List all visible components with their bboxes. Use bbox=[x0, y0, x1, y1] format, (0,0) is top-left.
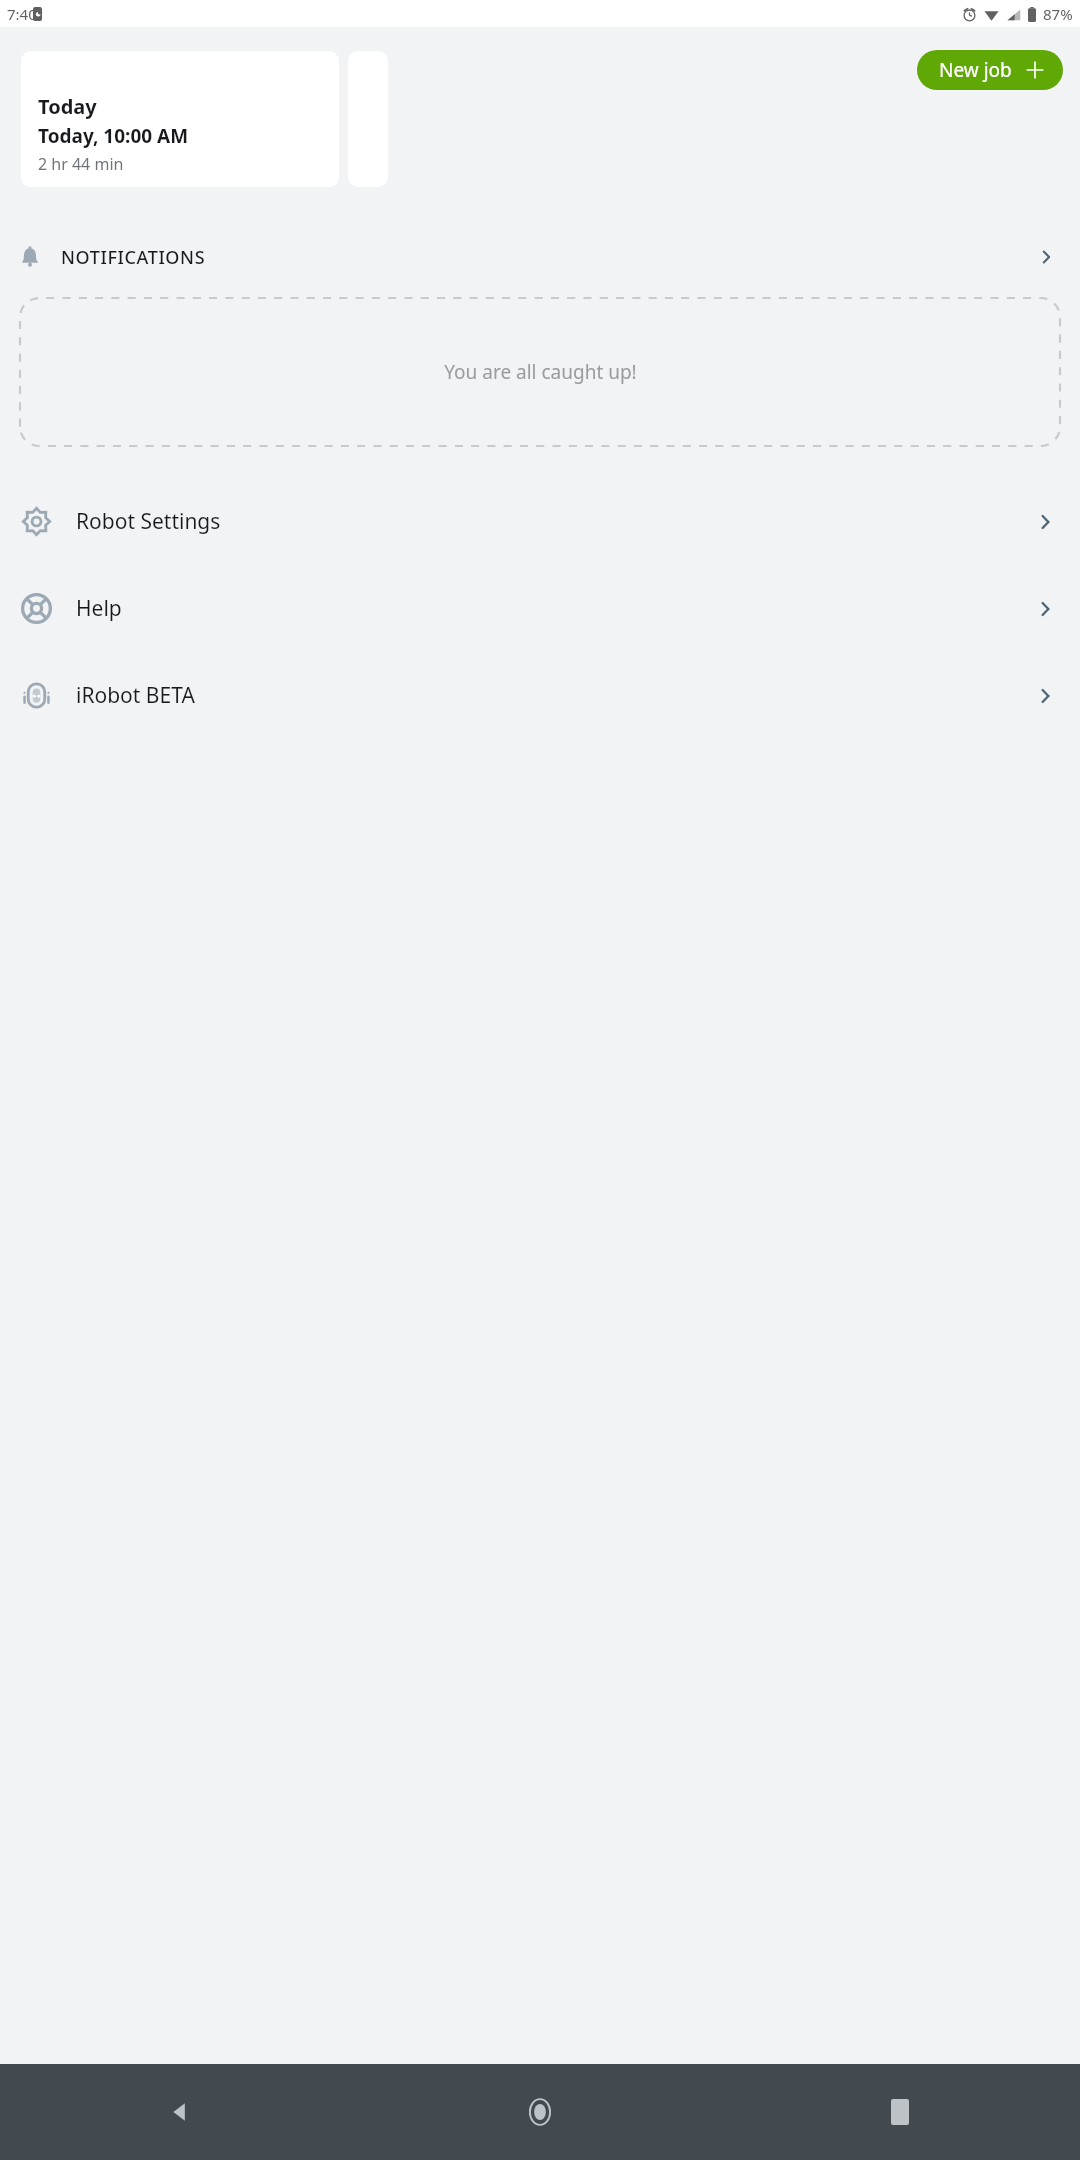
button[interactable]: NOTIFICATIONS bbox=[0, 230, 1080, 284]
button[interactable]: Help bbox=[0, 565, 1080, 652]
button[interactable]: Recent apps bbox=[876, 2088, 924, 2136]
button[interactable]: iRobot BETA bbox=[0, 652, 1080, 739]
button[interactable]: New job bbox=[917, 50, 1063, 90]
staticText: 7:40 bbox=[7, 4, 37, 24]
staticText: iRobot BETA bbox=[76, 681, 195, 710]
button[interactable]: Back bbox=[156, 2088, 204, 2136]
staticText: You are all caught up! bbox=[444, 359, 637, 385]
other: Add new job bbox=[1025, 60, 1045, 80]
button[interactable]: Today bbox=[21, 51, 339, 187]
staticText: NOTIFICATIONS bbox=[61, 245, 206, 270]
staticText: Robot Settings bbox=[76, 507, 221, 536]
staticText: New job bbox=[939, 57, 1012, 83]
staticText: Today, 10:00 AM bbox=[38, 123, 189, 149]
staticText: 87% bbox=[1043, 4, 1073, 24]
button[interactable]: Home bbox=[516, 2088, 564, 2136]
staticText: Help bbox=[76, 594, 122, 623]
staticText: 2 hr 44 min bbox=[38, 153, 124, 175]
button[interactable]: Robot Settings bbox=[0, 478, 1080, 565]
staticText: Today bbox=[38, 93, 97, 120]
